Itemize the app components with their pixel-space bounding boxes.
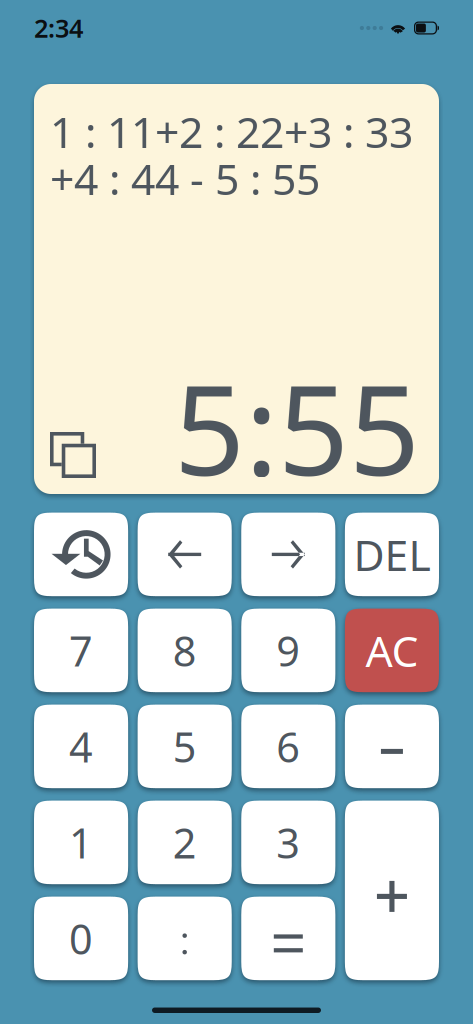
button[interactable]: DEL: [345, 513, 439, 596]
button[interactable]: 4: [34, 705, 128, 788]
staticText: 7: [69, 623, 93, 678]
button[interactable]: History: [34, 513, 128, 596]
button[interactable]: Move cursor right: [241, 513, 335, 596]
staticText: 6: [276, 719, 300, 774]
staticText: +4 : 44 - 5 : 55: [50, 150, 320, 207]
staticText: 1: [69, 815, 93, 870]
staticText: 8: [173, 623, 197, 678]
staticText: 2: [173, 815, 197, 870]
staticText: 9: [276, 623, 300, 678]
button[interactable]: 6: [241, 705, 335, 788]
button[interactable]: 0: [34, 897, 128, 980]
button[interactable]: 3: [241, 801, 335, 884]
button[interactable]: 7: [34, 609, 128, 692]
button[interactable]: Equals: [241, 897, 335, 980]
staticText: 1 : 11+2 : 22+3 : 33: [50, 103, 413, 160]
staticText: DEL: [353, 526, 430, 583]
button[interactable]: Colon: [138, 897, 232, 980]
button[interactable]: 9: [241, 609, 335, 692]
button[interactable]: Move cursor left: [138, 513, 232, 596]
staticText: 0: [69, 911, 93, 966]
button[interactable]: Plus: [345, 801, 439, 980]
staticText: 5: [173, 719, 197, 774]
button[interactable]: AC: [345, 609, 439, 692]
button[interactable]: 5: [138, 705, 232, 788]
button[interactable]: 8: [138, 609, 232, 692]
staticText: 3: [276, 815, 300, 870]
button[interactable]: 2: [138, 801, 232, 884]
staticText: 5:55: [174, 345, 420, 510]
button[interactable]: 1: [34, 801, 128, 884]
staticText: 4: [69, 719, 93, 774]
button[interactable]: Minus: [345, 705, 439, 788]
staticText: 2:34: [34, 11, 83, 45]
staticText: AC: [365, 622, 418, 679]
